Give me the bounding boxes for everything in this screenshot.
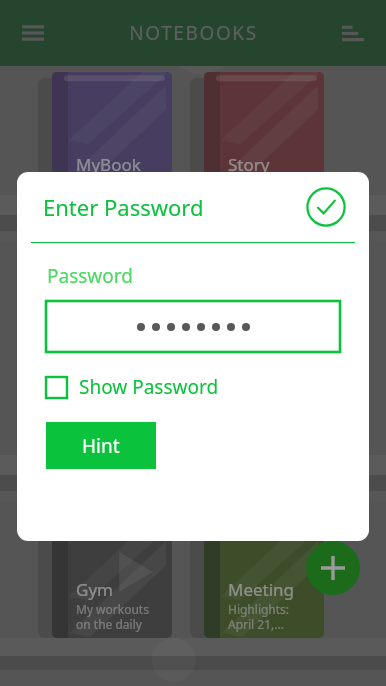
- button[interactable]: MyBook: [52, 72, 172, 182]
- button[interactable]: Add notebook: [306, 541, 360, 595]
- button[interactable]: Sort: [330, 10, 376, 56]
- button[interactable]: Story: [204, 72, 324, 182]
- button[interactable]: Hint: [46, 422, 156, 469]
- staticText: Enter Password: [43, 192, 204, 222]
- staticText: NOTEBOOKS: [129, 20, 258, 46]
- staticText: MyBook: [76, 153, 141, 176]
- button[interactable]: Meeting: [204, 528, 324, 638]
- button[interactable]: Confirm: [305, 186, 347, 228]
- staticText: Highlights: April 21,...: [228, 601, 290, 632]
- staticText: Story: [228, 153, 270, 176]
- staticText: My workouts on the daily: [76, 601, 149, 632]
- button[interactable]: Gym: [52, 528, 172, 638]
- staticText: Meeting: [228, 578, 295, 601]
- button[interactable]: Menu: [10, 10, 56, 56]
- staticText: Gym: [76, 578, 113, 601]
- button[interactable]: Show Password: [46, 374, 219, 400]
- staticText: Password: [47, 263, 133, 289]
- staticText: Show Password: [79, 374, 219, 400]
- staticText: Hint: [82, 433, 120, 459]
